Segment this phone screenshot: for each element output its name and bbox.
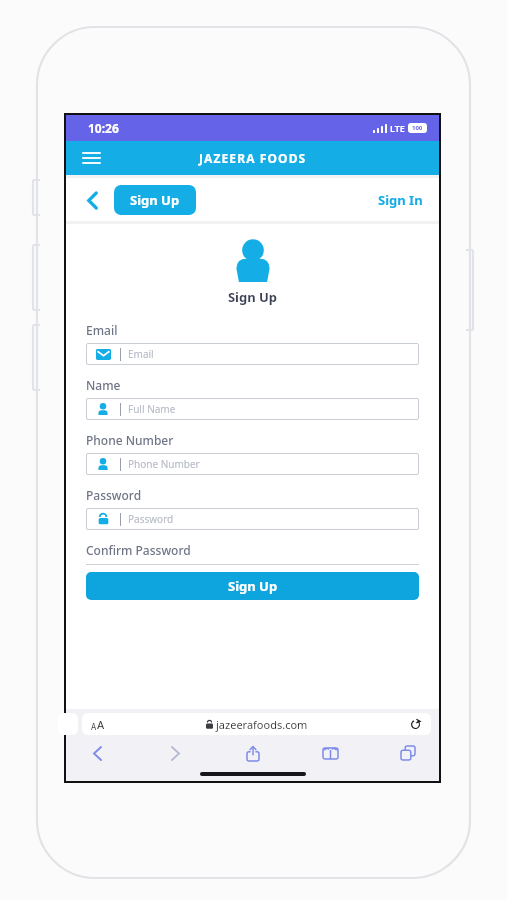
button[interactable]: Bookmarks (317, 741, 343, 765)
staticText: Sign Up (130, 191, 180, 209)
staticText: Phone Number (128, 457, 200, 471)
staticText: Email (86, 322, 118, 338)
staticText: LTE (390, 122, 405, 134)
button[interactable]: Sign Up (86, 572, 419, 600)
staticText: Password (128, 512, 174, 526)
staticText: 100 (412, 124, 423, 132)
button[interactable]: Sign Up (114, 185, 196, 215)
button[interactable]: Menu (78, 145, 104, 171)
button[interactable]: Reload (408, 717, 422, 731)
staticText: A (91, 721, 97, 732)
staticText: Confirm Password (86, 542, 191, 558)
button[interactable]: Share (240, 741, 266, 765)
button[interactable]: Forward (162, 741, 188, 765)
staticText: Full Name (128, 402, 176, 416)
button[interactable]: Full Name (86, 398, 419, 420)
staticText: A (97, 717, 105, 732)
staticText: Name (86, 377, 121, 393)
button[interactable]: Phone Number (86, 453, 419, 475)
staticText: Password (86, 487, 142, 503)
staticText: Sign Up (228, 577, 278, 595)
staticText: jazeerafoods.com (216, 717, 308, 732)
staticText: Sign Up (86, 288, 419, 306)
button[interactable]: Back (80, 188, 104, 212)
button[interactable]: Email (86, 343, 419, 365)
staticText: Phone Number (86, 432, 174, 448)
button[interactable]: A (82, 713, 431, 735)
staticText: Email (128, 347, 154, 361)
button[interactable]: Password (86, 508, 419, 530)
button[interactable]: Sign In (362, 183, 439, 217)
staticText: JAZEERA FOODS (199, 150, 307, 166)
staticText: 10:26 (88, 120, 119, 136)
button[interactable]: Back (84, 741, 110, 765)
staticText: Sign In (378, 191, 423, 209)
button[interactable]: Tabs (395, 741, 421, 765)
